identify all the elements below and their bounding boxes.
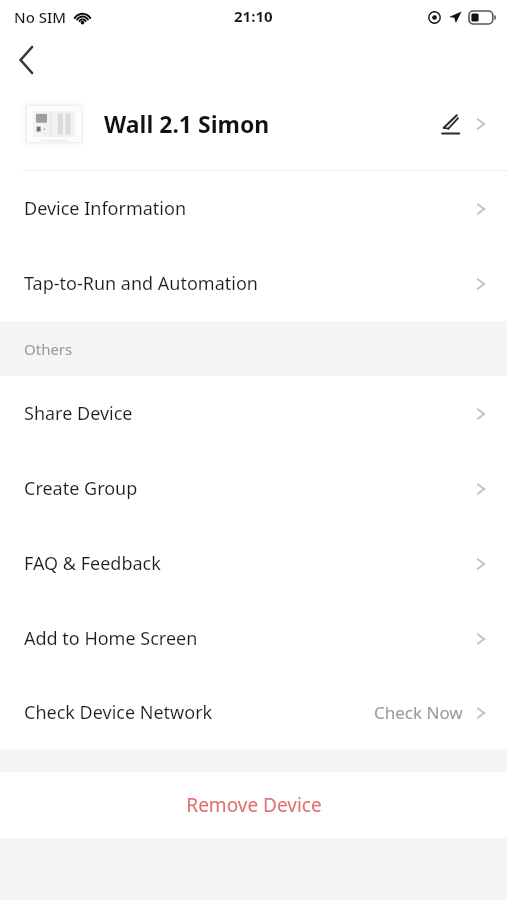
staticText: Check Device Network [24, 700, 213, 725]
button[interactable]: Edit device name [433, 107, 467, 141]
button[interactable]: Tap-to-Run and Automation [0, 246, 507, 321]
staticText: No SIM [14, 7, 67, 27]
button[interactable]: Create Group [0, 451, 507, 526]
staticText: Remove Device [186, 792, 322, 818]
button[interactable]: Add to Home Screen [0, 601, 507, 676]
button[interactable]: Remove Device [0, 772, 507, 838]
staticText: Create Group [24, 476, 138, 501]
button[interactable]: Check Device Network [0, 676, 507, 749]
staticText: Add to Home Screen [24, 626, 198, 651]
staticText: Tap-to-Run and Automation [24, 271, 258, 296]
staticText: Others [24, 339, 73, 359]
staticText: 21:10 [234, 6, 273, 26]
button[interactable]: Share Device [0, 376, 507, 451]
button[interactable]: Back [6, 39, 48, 81]
staticText: Share Device [24, 401, 133, 426]
button[interactable]: Wall 2.1 Simon [0, 86, 507, 161]
button[interactable]: Device Information [0, 171, 507, 246]
staticText: Check Now [374, 701, 463, 724]
staticText: Wall 2.1 Simon [104, 108, 270, 139]
staticText: Device Information [24, 196, 187, 221]
staticText: FAQ & Feedback [24, 551, 161, 576]
button[interactable]: FAQ & Feedback [0, 526, 507, 601]
